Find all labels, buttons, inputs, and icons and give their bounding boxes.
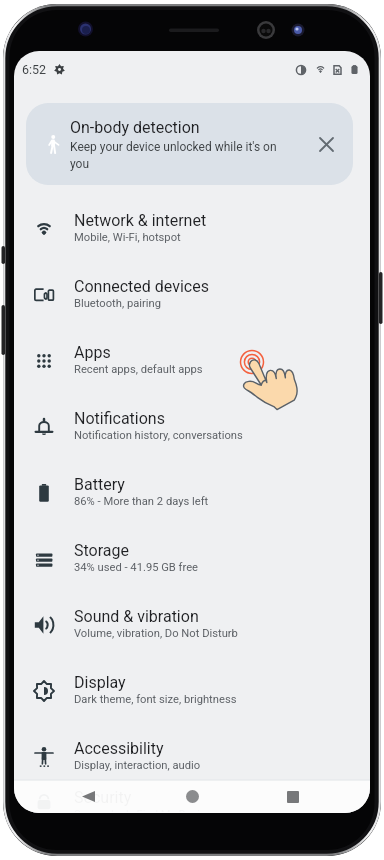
- staticText: Bluetooth, pairing: [74, 297, 161, 310]
- button[interactable]: Accessibility: [14, 723, 370, 789]
- staticText: Mobile, Wi-Fi, hotspot: [74, 231, 181, 244]
- button[interactable]: Storage: [14, 525, 370, 591]
- staticText: Apps: [74, 343, 111, 362]
- button[interactable]: Apps: [14, 327, 370, 393]
- staticText: Notifications: [74, 409, 165, 428]
- staticText: Security: [74, 788, 132, 807]
- staticText: Volume, vibration, Do Not Disturb: [74, 627, 238, 640]
- staticText: Display: [74, 673, 126, 692]
- button[interactable]: Security: [14, 789, 370, 813]
- staticText: Connected devices: [74, 277, 209, 296]
- staticText: Dark theme, font size, brightness: [74, 693, 237, 706]
- staticText: Display, interaction, audio: [74, 759, 201, 772]
- button[interactable]: Sound & vibration: [14, 591, 370, 657]
- button[interactable]: Notifications: [14, 393, 370, 459]
- staticText: 34% used - 41.95 GB free: [74, 561, 199, 574]
- button[interactable]: Battery: [14, 459, 370, 525]
- button[interactable]: Home: [172, 780, 212, 813]
- staticText: On-body detection: [70, 118, 200, 137]
- staticText: 6:52: [22, 62, 47, 77]
- staticText: Sound & vibration: [74, 607, 199, 626]
- button[interactable]: Back: [68, 780, 108, 813]
- button[interactable]: Display: [14, 657, 370, 723]
- staticText: Notification history, conversations: [74, 429, 243, 442]
- button[interactable]: Connected devices: [14, 261, 370, 327]
- button[interactable]: Network & internet: [14, 195, 370, 261]
- staticText: Storage: [74, 541, 129, 560]
- staticText: Accessibility: [74, 739, 164, 758]
- staticText: Battery: [74, 475, 125, 494]
- button[interactable]: Recent apps: [273, 780, 313, 813]
- staticText: Recent apps, default apps: [74, 363, 203, 376]
- button[interactable]: On-body detection: [26, 103, 353, 185]
- staticText: Network & internet: [74, 211, 207, 230]
- staticText: 86% - More than 2 days left: [74, 495, 209, 508]
- staticText: Keep your device unlocked while it's on …: [70, 140, 279, 171]
- button[interactable]: Dismiss: [313, 131, 339, 157]
